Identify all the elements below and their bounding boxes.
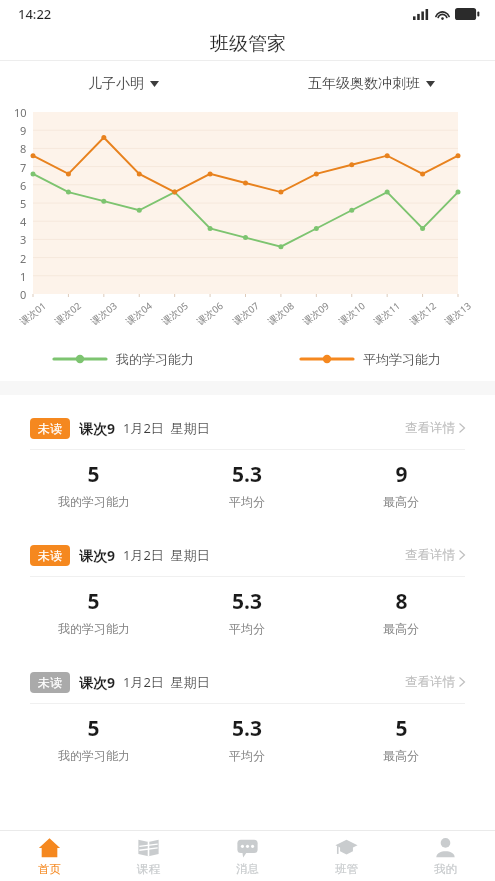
staticText: 课次08	[265, 299, 297, 328]
button[interactable]: 未读	[17, 661, 478, 775]
staticText: 课次10	[336, 299, 368, 328]
staticText: 5.3	[232, 460, 262, 489]
staticText: 4	[20, 214, 27, 229]
staticText: 班管	[335, 862, 358, 876]
staticText: 5	[20, 196, 27, 211]
staticText: 查看详情	[405, 547, 455, 563]
staticText: 0	[20, 287, 27, 302]
staticText: 班级管家	[210, 32, 286, 56]
staticText: 课次01	[17, 299, 49, 328]
staticText: 3	[20, 232, 27, 247]
staticText: 课次02	[52, 299, 84, 328]
staticText: 5	[395, 714, 408, 743]
staticText: 5.3	[232, 714, 262, 743]
staticText: 课次05	[159, 299, 191, 328]
staticText: 平均分	[229, 621, 265, 636]
staticText: 查看详情	[405, 674, 455, 690]
staticText: 5.3	[232, 587, 262, 616]
staticText: 1	[20, 269, 27, 284]
staticText: 9	[395, 460, 408, 489]
staticText: 未读	[38, 548, 62, 563]
staticText: 1月2日 星期日	[123, 673, 210, 691]
staticText: 我的学习能力	[58, 748, 130, 763]
staticText: 14:22	[18, 5, 52, 23]
staticText: 平均分	[229, 748, 265, 763]
staticText: 课次09	[300, 299, 332, 328]
staticText: 最高分	[383, 748, 419, 763]
staticText: 2	[20, 251, 27, 266]
staticText: 最高分	[383, 494, 419, 509]
staticText: 五年级奥数冲刺班	[308, 75, 420, 93]
button[interactable]: 查看详情	[405, 674, 465, 690]
button[interactable]: 儿子小明	[84, 71, 163, 97]
staticText: 8	[20, 141, 27, 156]
staticText: 我的	[434, 862, 457, 876]
button[interactable]: 课程	[99, 831, 198, 881]
button[interactable]: 班管	[297, 831, 396, 881]
staticText: 5	[87, 460, 100, 489]
staticText: 课次04	[123, 299, 155, 328]
button[interactable]: 我的	[396, 831, 495, 881]
staticText: 课次9	[79, 673, 116, 692]
staticText: 未读	[38, 421, 62, 436]
staticText: 平均分	[229, 494, 265, 509]
staticText: 1月2日 星期日	[123, 419, 210, 437]
staticText: 我的学习能力	[58, 621, 130, 636]
staticText: 6	[20, 178, 27, 193]
button[interactable]: 未读	[17, 534, 478, 648]
button[interactable]: 查看详情	[405, 420, 465, 436]
button[interactable]: 五年级奥数冲刺班	[304, 71, 439, 97]
staticText: 最高分	[383, 621, 419, 636]
staticText: 平均学习能力	[363, 351, 441, 367]
staticText: 5	[87, 714, 100, 743]
staticText: 查看详情	[405, 420, 455, 436]
staticText: 课程	[137, 862, 160, 876]
staticText: 消息	[236, 862, 259, 876]
button[interactable]: 消息	[198, 831, 297, 881]
staticText: 课次06	[194, 299, 226, 328]
staticText: 课次9	[79, 546, 116, 565]
staticText: 未读	[38, 675, 62, 690]
button[interactable]: 首页	[0, 831, 99, 881]
staticText: 课次9	[79, 419, 116, 438]
staticText: 课次11	[371, 299, 403, 328]
staticText: 7	[20, 160, 27, 175]
button[interactable]: 未读	[17, 407, 478, 521]
button[interactable]: 查看详情	[405, 547, 465, 563]
staticText: 课次13	[442, 299, 474, 328]
staticText: 课次03	[88, 299, 120, 328]
staticText: 儿子小明	[88, 75, 144, 93]
staticText: 我的学习能力	[116, 351, 194, 367]
staticText: 1月2日 星期日	[123, 546, 210, 564]
staticText: 10	[14, 105, 27, 120]
staticText: 课次12	[407, 299, 439, 328]
staticText: 5	[87, 587, 100, 616]
staticText: 首页	[38, 862, 61, 876]
staticText: 我的学习能力	[58, 494, 130, 509]
staticText: 9	[20, 123, 27, 138]
staticText: 课次07	[230, 299, 262, 328]
staticText: 8	[395, 587, 408, 616]
